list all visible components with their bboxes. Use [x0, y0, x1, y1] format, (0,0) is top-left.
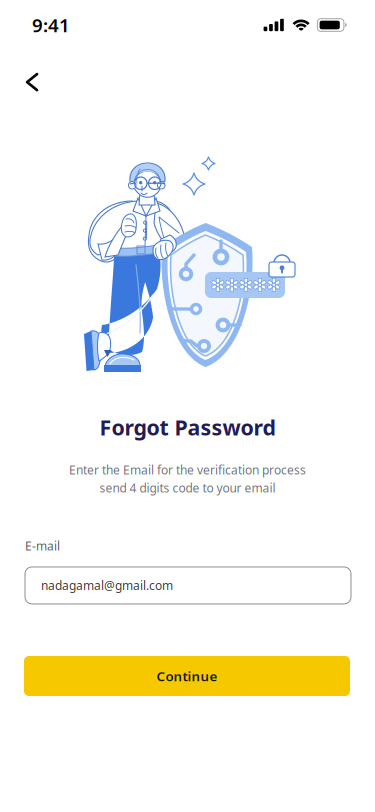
staticText: send 4 digits code to your email	[99, 480, 275, 496]
button[interactable]: Continue	[24, 656, 350, 696]
staticText: Forgot Password	[99, 413, 275, 441]
staticText: Continue	[156, 667, 217, 685]
button[interactable]: Back	[10, 60, 54, 104]
staticText: 9:41	[32, 13, 70, 37]
staticText: nadagamal@gmail.com	[41, 577, 173, 593]
staticText: Enter the Email for the verification pro…	[69, 462, 306, 478]
staticText: E-mail	[25, 538, 60, 554]
